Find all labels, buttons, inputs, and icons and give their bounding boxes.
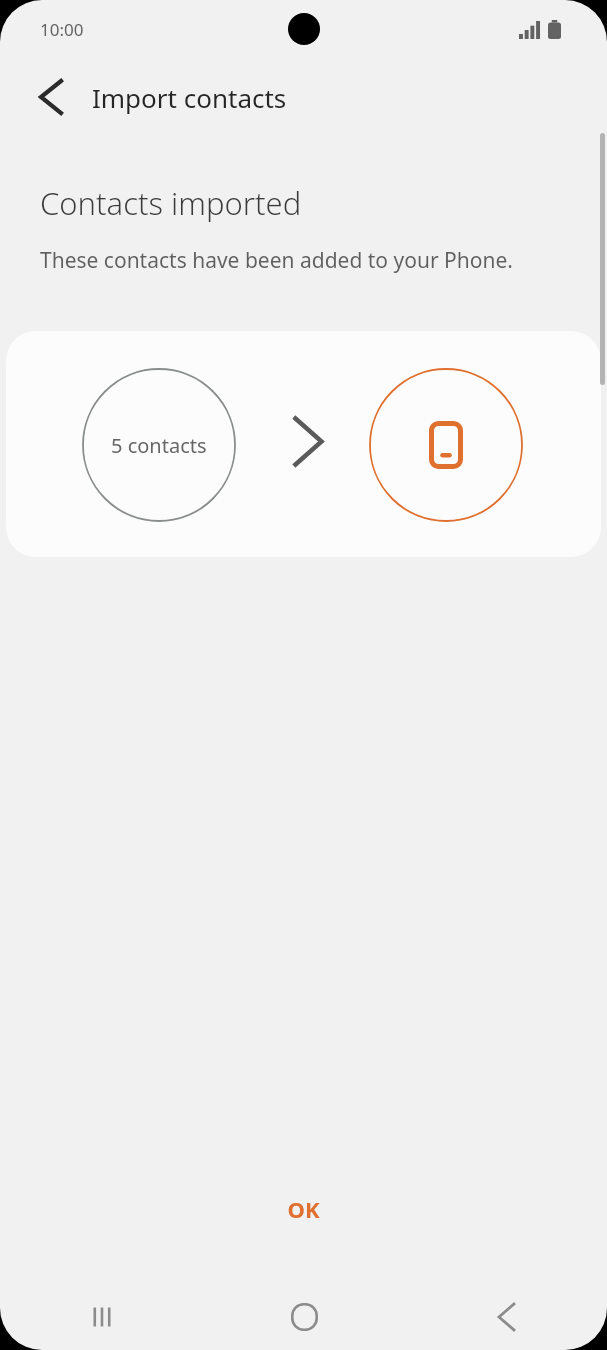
- button[interactable]: 5 contacts: [6, 331, 601, 557]
- button[interactable]: Back: [405, 1284, 607, 1350]
- staticText: Import contacts: [92, 80, 287, 115]
- button[interactable]: Back: [20, 66, 82, 128]
- staticText: OK: [287, 1194, 320, 1224]
- button[interactable]: Recent apps: [0, 1284, 203, 1350]
- staticText: These contacts have been added to your P…: [40, 246, 513, 275]
- button[interactable]: Home: [203, 1284, 405, 1350]
- staticText: Contacts imported: [40, 182, 302, 224]
- button[interactable]: OK: [0, 1178, 607, 1240]
- staticText: 5 contacts: [111, 432, 207, 459]
- staticText: 10:00: [40, 18, 84, 41]
